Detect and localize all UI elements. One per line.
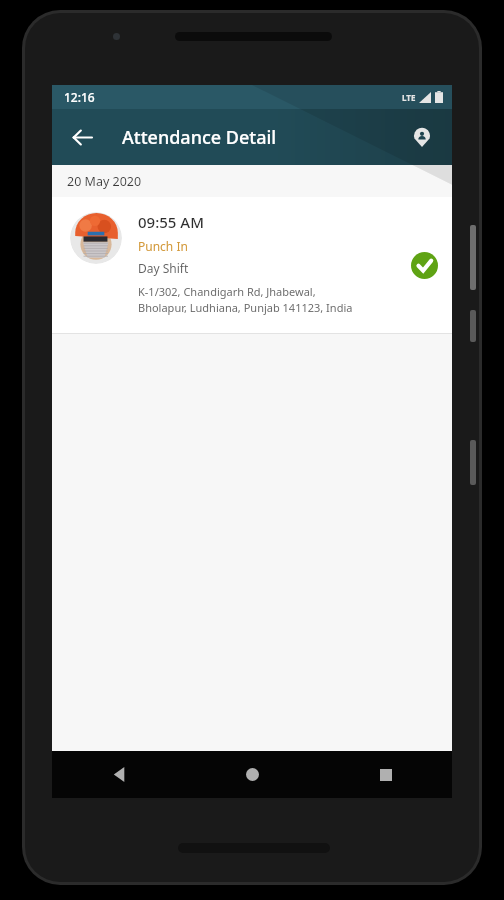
button[interactable]: Back <box>60 115 104 159</box>
staticText: 20 May 2020 <box>67 173 142 190</box>
staticText: 12:16 <box>64 89 95 105</box>
button[interactable]: Location <box>400 115 444 159</box>
staticText: K-1/302, Chandigarh Rd, Jhabewal, Bholap… <box>138 284 353 315</box>
button[interactable]: 09:55 AM <box>52 197 452 334</box>
staticText: Punch In <box>138 238 188 254</box>
button[interactable]: Back <box>52 751 186 798</box>
staticText: Day Shift <box>138 260 189 276</box>
staticText: Attendance Detail <box>122 125 277 150</box>
staticText: 09:55 AM <box>138 212 204 232</box>
staticText: LTE <box>402 92 416 103</box>
button[interactable]: Recent apps <box>319 751 452 798</box>
button[interactable]: Home <box>186 751 319 798</box>
